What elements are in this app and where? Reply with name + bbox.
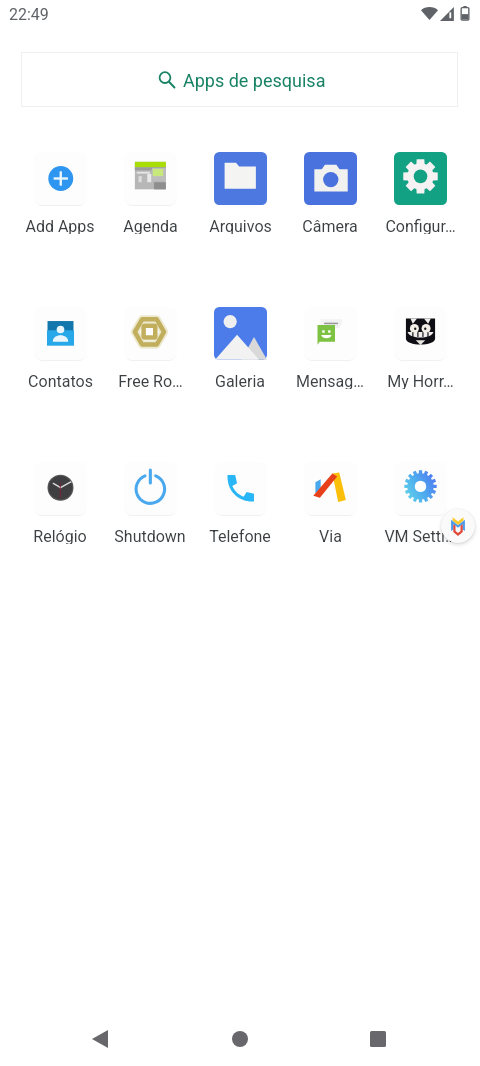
button[interactable]: Add Apps	[15, 144, 105, 234]
button[interactable]: Agenda	[105, 144, 195, 234]
staticText: Configur…	[385, 217, 456, 234]
button[interactable]: VM Setti…	[375, 454, 465, 544]
staticText: Relógio	[33, 527, 87, 544]
button[interactable]: MuMu Assistant	[441, 509, 475, 543]
staticText: Agenda	[123, 217, 178, 234]
button[interactable]: Home	[212, 1011, 268, 1066]
button[interactable]: Recent apps	[350, 1011, 406, 1066]
staticText: Mensag…	[296, 372, 364, 389]
button[interactable]: Relógio	[15, 454, 105, 544]
staticText: Contatos	[28, 372, 93, 389]
button[interactable]: Apps de pesquisa	[21, 52, 458, 107]
button[interactable]: Telefone	[195, 454, 285, 544]
button[interactable]: Câmera	[285, 144, 375, 234]
button[interactable]: Free Ro…	[105, 299, 195, 389]
button[interactable]: Mensag…	[285, 299, 375, 389]
staticText: My Horr…	[387, 372, 454, 389]
button[interactable]: Arquivos	[195, 144, 285, 234]
button[interactable]: Shutdown	[105, 454, 195, 544]
staticText: Telefone	[209, 527, 271, 544]
button[interactable]: Galeria	[195, 299, 285, 389]
button[interactable]: Contatos	[15, 299, 105, 389]
staticText: Add Apps	[25, 217, 95, 234]
staticText: Free Ro…	[118, 372, 183, 389]
button[interactable]: Via	[285, 454, 375, 544]
staticText: Arquivos	[209, 217, 272, 234]
button[interactable]: Configur…	[375, 144, 465, 234]
staticText: VM Setti…	[384, 527, 456, 544]
staticText: Shutdown	[114, 527, 186, 544]
staticText: 22:49	[9, 5, 49, 24]
button[interactable]: My Horr…	[375, 299, 465, 389]
button[interactable]: Back	[72, 1011, 128, 1066]
staticText: Câmera	[302, 217, 358, 234]
staticText: Via	[319, 527, 342, 544]
staticText: Galeria	[215, 372, 265, 389]
staticText: Apps de pesquisa	[183, 70, 326, 91]
